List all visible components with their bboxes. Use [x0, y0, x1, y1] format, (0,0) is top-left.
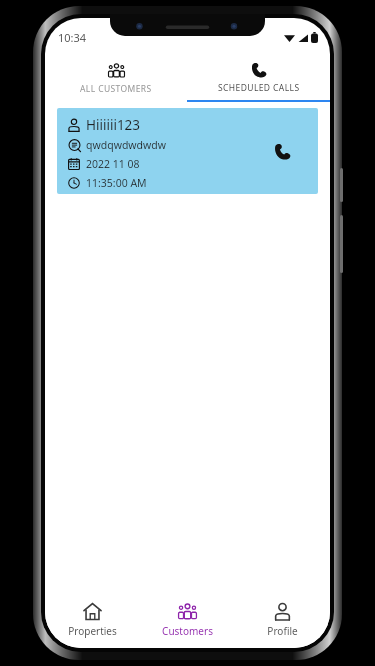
staticText: 2022 11 08: [86, 157, 140, 171]
staticText: qwdqwdwdwdw: [86, 138, 167, 152]
staticText: Hiiiiii123: [86, 116, 141, 134]
button[interactable]: Profile: [235, 592, 330, 648]
button[interactable]: Call: [266, 135, 298, 167]
button[interactable]: Properties: [45, 592, 140, 648]
staticText: Customers: [162, 624, 213, 638]
staticText: ALL CUSTOMERS: [80, 83, 152, 95]
staticText: Properties: [68, 624, 117, 638]
staticText: 11:35:00 AM: [86, 176, 147, 190]
button[interactable]: Customers: [140, 592, 235, 648]
staticText: SCHEDULED CALLS: [218, 82, 300, 94]
button[interactable]: Hiiiiii123: [57, 108, 318, 194]
staticText: Profile: [267, 624, 298, 638]
button[interactable]: SCHEDULED CALLS: [187, 56, 330, 100]
staticText: 10:34: [58, 30, 87, 45]
button[interactable]: ALL CUSTOMERS: [45, 56, 187, 100]
